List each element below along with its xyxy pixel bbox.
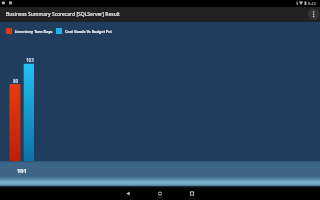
staticText: 103	[26, 57, 34, 63]
button[interactable]: Back	[121, 187, 135, 200]
button[interactable]: Cost Goods Vs Budget Pct	[56, 28, 112, 34]
staticText: 101	[17, 167, 27, 175]
button[interactable]: Inventory Turn Days	[6, 28, 53, 34]
staticText: Cost Goods Vs Budget Pct	[65, 29, 112, 34]
button[interactable]: Recents	[185, 187, 199, 200]
staticText: 8:40	[308, 1, 316, 6]
staticText: Inventory Turn Days	[15, 29, 53, 34]
staticText: 80	[13, 78, 19, 84]
button[interactable]: More options	[305, 7, 320, 22]
staticText: Business Summary Scorecard [SQLServer] R…	[6, 11, 120, 18]
button[interactable]: Home	[153, 187, 167, 200]
